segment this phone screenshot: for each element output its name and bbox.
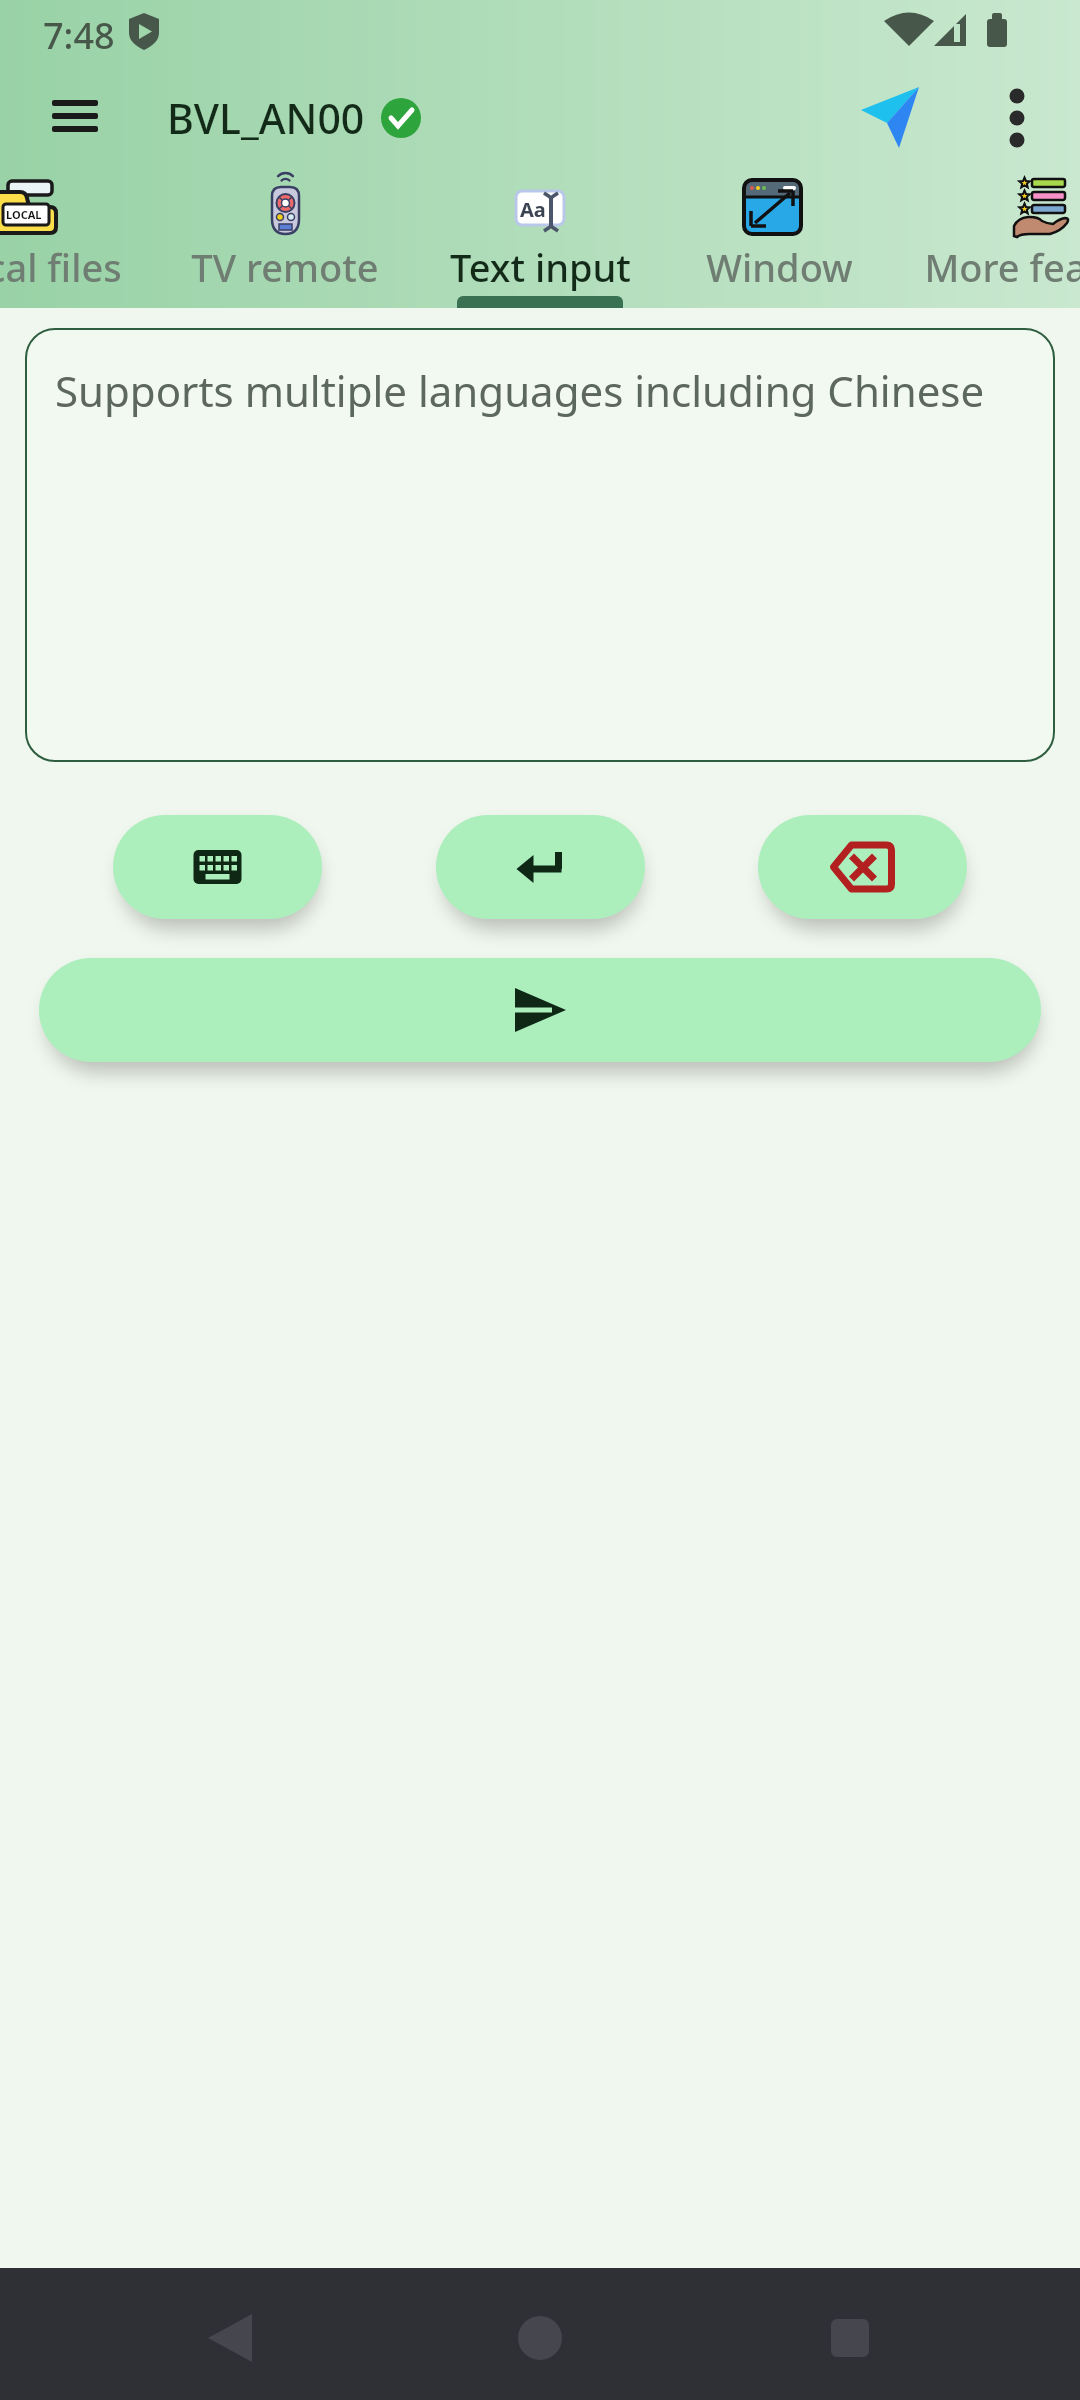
staticText: Aa — [520, 196, 546, 223]
staticText: LOCAL — [6, 207, 42, 222]
staticText: Text input — [450, 241, 631, 293]
button[interactable]: Window — [649, 163, 909, 305]
staticText: Window — [706, 241, 853, 293]
button[interactable]: More features — [922, 163, 1080, 305]
button[interactable]: Local files — [0, 163, 162, 305]
button[interactable] — [180, 2288, 280, 2380]
staticText: Local files — [0, 241, 122, 293]
button[interactable] — [113, 815, 322, 919]
button[interactable] — [490, 2288, 590, 2380]
button[interactable] — [39, 958, 1041, 1062]
button[interactable] — [436, 815, 645, 919]
staticText: Supports multiple languages including Ch… — [55, 362, 985, 419]
button[interactable] — [980, 80, 1060, 160]
staticText: 7:48 — [43, 11, 115, 60]
button[interactable]: Supports multiple languages including Ch… — [25, 328, 1055, 762]
button[interactable]: TV remote — [155, 163, 415, 305]
staticText: TV remote — [191, 241, 379, 293]
button[interactable]: Text input — [410, 163, 670, 305]
staticText: More features — [924, 241, 1080, 293]
button[interactable] — [840, 80, 940, 160]
button[interactable] — [40, 85, 110, 151]
button[interactable]: BVL_AN00 — [167, 90, 365, 146]
button[interactable] — [758, 815, 967, 919]
button[interactable] — [800, 2288, 900, 2380]
